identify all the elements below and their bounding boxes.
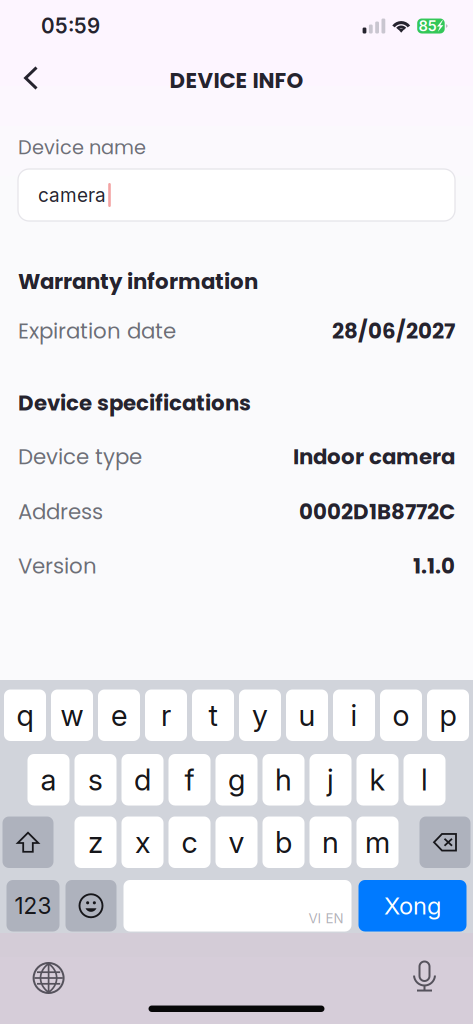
button[interactable]: c [168, 816, 210, 868]
button[interactable]: b [262, 816, 304, 868]
button[interactable]: Shift [2, 816, 53, 868]
staticText: VI EN [308, 910, 343, 926]
staticText: v [228, 824, 244, 860]
button[interactable]: Xong [358, 880, 466, 931]
staticText: 0002D1B8772C [299, 497, 455, 527]
staticText: Expiration date [18, 316, 176, 346]
button[interactable]: t [192, 689, 234, 741]
button[interactable]: d [121, 754, 163, 805]
staticText: k [369, 762, 385, 797]
staticText: m [365, 824, 390, 860]
button[interactable]: l [403, 754, 445, 805]
button[interactable]: y [239, 689, 281, 741]
staticText: f [184, 762, 194, 797]
staticText: u [298, 697, 315, 733]
button[interactable]: e [98, 689, 140, 741]
staticText: r [161, 697, 171, 733]
staticText: c [181, 824, 197, 860]
button[interactable]: v [215, 816, 257, 868]
staticText: z [88, 824, 103, 860]
button[interactable]: 123 [6, 880, 59, 931]
button[interactable]: Space [123, 880, 351, 931]
staticText: Indoor camera [293, 442, 455, 472]
button[interactable]: o [380, 689, 422, 741]
button[interactable]: Back [12, 52, 50, 104]
staticText: 28/06/2027 [332, 316, 455, 346]
staticText: o [392, 697, 409, 733]
staticText: 123 [14, 892, 51, 919]
button[interactable]: i [333, 689, 375, 741]
staticText: s [88, 762, 103, 797]
button[interactable]: m [356, 816, 398, 868]
button[interactable]: g [215, 754, 257, 805]
button[interactable]: a [27, 754, 69, 805]
staticText: i [350, 697, 357, 733]
button[interactable]: k [356, 754, 398, 805]
staticText: a [40, 762, 56, 797]
button[interactable]: j [309, 754, 351, 805]
staticText: l [421, 762, 428, 797]
button[interactable]: Change keyboard [32, 961, 66, 995]
staticText: Version [18, 551, 97, 581]
staticText: 05:59 [41, 13, 100, 38]
button[interactable]: Delete [419, 816, 470, 868]
staticText: p [439, 697, 456, 733]
staticText: Warranty information [18, 267, 258, 297]
staticText: g [228, 762, 245, 797]
staticText: e [111, 697, 127, 733]
button[interactable]: z [74, 816, 116, 868]
button[interactable]: u [286, 689, 328, 741]
staticText: n [322, 824, 339, 860]
staticText: b [275, 824, 292, 860]
staticText: h [275, 762, 292, 797]
button[interactable]: q [4, 689, 46, 741]
button[interactable]: x [121, 816, 163, 868]
staticText: Device type [18, 442, 142, 472]
staticText: Device name [18, 134, 146, 161]
staticText: Xong [384, 891, 441, 920]
button[interactable]: r [145, 689, 187, 741]
staticText: camera [38, 183, 106, 206]
staticText: t [208, 697, 217, 733]
staticText: j [327, 762, 334, 797]
button[interactable]: h [262, 754, 304, 805]
button[interactable]: f [168, 754, 210, 805]
button[interactable]: p [427, 689, 469, 741]
staticText: 1.1.0 [413, 551, 455, 581]
staticText: w [60, 697, 83, 733]
staticText: y [252, 697, 268, 733]
staticText: Address [18, 497, 103, 527]
button[interactable]: s [74, 754, 116, 805]
button[interactable]: Emoji [65, 880, 116, 931]
staticText: Device specifications [18, 388, 251, 418]
staticText: 85 [418, 17, 436, 35]
button[interactable]: Dictation [414, 961, 435, 991]
staticText: q [16, 697, 33, 733]
staticText: x [135, 824, 150, 860]
staticText: DEVICE INFO [169, 66, 303, 95]
button[interactable]: w [51, 689, 93, 741]
staticText: d [134, 762, 151, 797]
button[interactable]: n [309, 816, 351, 868]
